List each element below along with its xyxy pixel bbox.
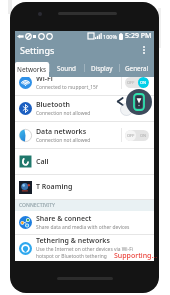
staticText: Display xyxy=(91,64,113,73)
staticText: OFF xyxy=(127,133,135,138)
button[interactable]: OFF xyxy=(125,77,149,88)
staticText: ON xyxy=(140,80,147,85)
button[interactable]: Data networks xyxy=(15,122,154,149)
staticText: 5:29 PM xyxy=(125,31,152,41)
staticText: Connection not allowed xyxy=(36,137,91,144)
button[interactable]: Wi-Fi xyxy=(15,77,154,91)
staticText: ON xyxy=(140,133,147,138)
button[interactable]: General xyxy=(119,59,154,77)
staticText: CONNECTIVITY xyxy=(19,202,55,209)
staticText: Share & connect xyxy=(36,214,92,224)
button[interactable]: Share & connect xyxy=(15,211,154,235)
staticText: OFF xyxy=(127,133,135,138)
staticText: Data networks xyxy=(36,127,87,137)
button[interactable]: Remote control cursor xyxy=(126,89,152,115)
button[interactable]: T Roaming xyxy=(15,175,154,200)
staticText: Settings xyxy=(20,44,55,56)
staticText: Connected to rsupport_15f xyxy=(36,84,98,91)
button[interactable]: Display xyxy=(84,59,119,77)
staticText: ON xyxy=(140,80,147,85)
button[interactable]: Tethering & networks xyxy=(15,235,154,261)
staticText: Bluetooth xyxy=(36,100,70,110)
staticText: Supporting... xyxy=(114,251,158,261)
button[interactable]: More options xyxy=(140,43,148,57)
button[interactable]: Call xyxy=(15,149,154,175)
button[interactable]: Sound xyxy=(49,59,84,77)
staticText: Call xyxy=(36,157,49,167)
button[interactable]: OFF xyxy=(125,130,149,141)
staticText: Tethering & networks xyxy=(36,236,110,246)
staticText: Networks xyxy=(17,65,47,74)
staticText: OFF xyxy=(127,80,135,85)
staticText: Share data and media with other devices xyxy=(36,224,130,231)
staticText: General xyxy=(125,64,149,73)
staticText: 100% xyxy=(103,33,118,40)
staticText: Wi-Fi xyxy=(36,77,53,84)
button[interactable]: Networks xyxy=(15,62,49,77)
staticText: Connection not allowed xyxy=(36,110,91,117)
staticText: T Roaming xyxy=(36,182,73,192)
staticText: Use the Internet on other devices via Wi… xyxy=(36,246,133,260)
staticText: Sound xyxy=(57,64,76,73)
button[interactable]: Bluetooth xyxy=(15,96,154,122)
